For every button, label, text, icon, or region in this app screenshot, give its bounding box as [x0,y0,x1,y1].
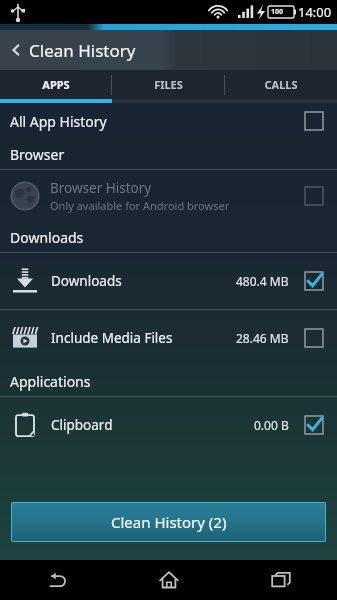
staticText: 0.00 B [254,417,289,433]
button[interactable]: Toggle [301,412,327,438]
button[interactable]: Include Media Files [0,310,337,366]
staticText: Downloads [51,272,122,290]
button[interactable]: Home [113,560,225,600]
button[interactable]: Toggle [301,183,327,209]
staticText: Browser [10,145,65,164]
staticText: Only available for Android browser [50,198,230,213]
staticText: 28.46 MB [236,330,289,346]
staticText: 480.4 MB [236,273,289,289]
staticText: Include Media Files [51,329,173,347]
staticText: All App History [10,112,107,131]
button[interactable]: All App History [0,103,337,139]
button[interactable]: Downloads [0,253,337,309]
staticText: CALLS [264,77,298,92]
button[interactable]: Toggle [301,268,327,294]
staticText: Downloads [10,228,84,247]
staticText: Clean History [29,39,136,62]
button[interactable]: Toggle [301,325,327,351]
button[interactable]: Clean History (2) [11,502,326,542]
button[interactable]: Clipboard [0,397,337,453]
button[interactable]: FILES [112,70,224,99]
button[interactable]: Back [0,560,113,600]
staticText: Browser History [50,179,152,197]
staticText: Applications [10,372,91,391]
staticText: FILES [154,77,183,92]
button[interactable]: CALLS [225,70,337,99]
button[interactable]: Recent apps [225,560,337,600]
button[interactable]: Browser History [0,170,337,222]
staticText: 14:00 [298,3,332,21]
other: Back [9,43,23,57]
staticText: Clean History (2) [111,512,227,532]
staticText: Clipboard [51,416,113,434]
button[interactable]: APPS [0,70,111,99]
button[interactable]: Toggle [301,108,327,134]
staticText: 100 [271,7,284,17]
button[interactable]: Back [0,30,337,70]
staticText: APPS [42,77,70,92]
